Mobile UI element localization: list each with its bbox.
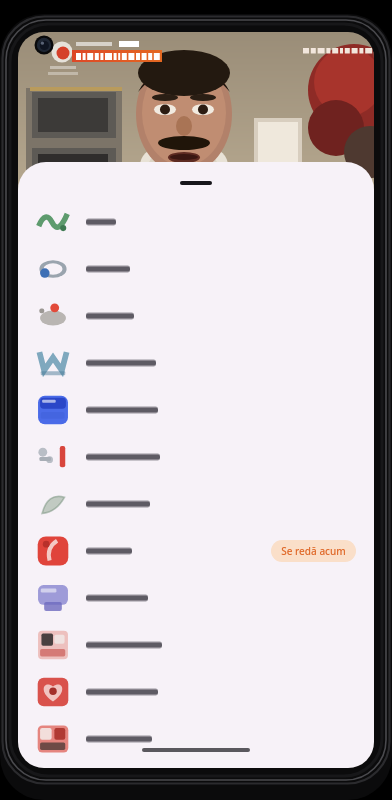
button[interactable] <box>18 668 374 715</box>
button[interactable] <box>18 162 374 194</box>
button[interactable] <box>18 292 374 339</box>
button[interactable] <box>18 386 374 433</box>
button[interactable]: Se redă acum <box>18 527 374 574</box>
button[interactable] <box>18 198 374 245</box>
button[interactable] <box>18 574 374 621</box>
button[interactable] <box>18 245 374 292</box>
button[interactable] <box>18 715 374 762</box>
staticText: Se redă acum <box>281 544 346 558</box>
button[interactable]: Se redă acum <box>271 540 356 562</box>
button[interactable] <box>18 480 374 527</box>
button[interactable] <box>18 621 374 668</box>
button[interactable] <box>18 339 374 386</box>
button[interactable] <box>18 433 374 480</box>
